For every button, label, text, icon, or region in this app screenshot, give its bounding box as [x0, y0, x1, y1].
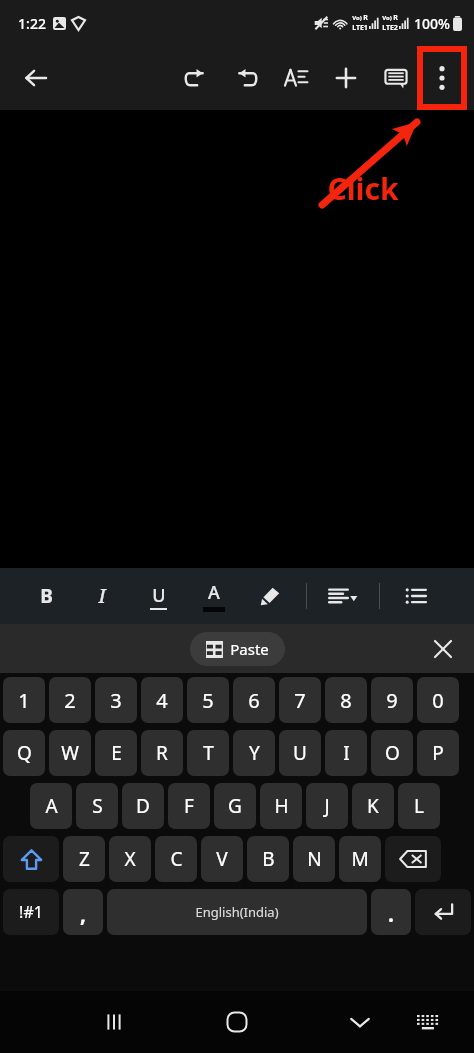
button[interactable]: 1 — [3, 677, 45, 723]
button[interactable]: I — [325, 730, 367, 776]
button[interactable]: Z — [63, 836, 105, 882]
button[interactable]: C — [155, 836, 197, 882]
button[interactable]: D — [122, 783, 164, 829]
button[interactable]: F — [168, 783, 210, 829]
staticText: C — [170, 846, 183, 872]
staticText: A — [208, 580, 220, 605]
button[interactable]: 5 — [187, 677, 229, 723]
button[interactable]: Enter — [415, 889, 471, 935]
staticText: O — [385, 740, 400, 766]
staticText: Vo) — [352, 14, 362, 22]
button[interactable]: W — [49, 730, 91, 776]
button[interactable]: P — [417, 730, 459, 776]
button[interactable]: 0 — [417, 677, 459, 723]
staticText: S — [92, 793, 103, 819]
staticText: B — [262, 846, 275, 872]
button[interactable]: Insert — [326, 58, 366, 98]
button[interactable]: 4 — [141, 677, 183, 723]
button[interactable]: R — [141, 730, 183, 776]
staticText: , — [80, 900, 86, 929]
button[interactable]: Format — [323, 574, 363, 618]
staticText: Paste — [230, 639, 269, 659]
button[interactable]: J — [306, 783, 348, 829]
staticText: R — [363, 13, 368, 23]
staticText: Click — [327, 168, 399, 209]
staticText: . — [388, 900, 394, 929]
button[interactable]: 9 — [371, 677, 413, 723]
button[interactable]: H — [260, 783, 302, 829]
button[interactable]: M — [339, 836, 381, 882]
button[interactable]: N — [293, 836, 335, 882]
button[interactable]: K — [352, 783, 394, 829]
button[interactable]: S — [76, 783, 118, 829]
staticText: Q — [17, 740, 32, 766]
staticText: 8 — [340, 687, 352, 714]
button[interactable]: G — [214, 783, 256, 829]
button[interactable]: Q — [3, 730, 45, 776]
button[interactable]: Shift — [3, 836, 59, 882]
button[interactable]: A — [30, 783, 72, 829]
staticText: E — [111, 740, 122, 766]
button[interactable]: X — [109, 836, 151, 882]
button[interactable]: Backspace — [385, 836, 441, 882]
button[interactable]: 6 — [233, 677, 275, 723]
button[interactable]: 8 — [325, 677, 367, 723]
staticText: Y — [249, 740, 260, 766]
button[interactable]: 2 — [49, 677, 91, 723]
staticText: I — [343, 740, 350, 766]
button[interactable]: Recents — [90, 998, 138, 1046]
button[interactable]: Comment — [376, 58, 416, 98]
button[interactable]: Format — [396, 574, 436, 618]
button[interactable]: Format — [26, 574, 66, 618]
button[interactable]: B — [247, 836, 289, 882]
staticText: K — [367, 793, 379, 819]
button[interactable]: Paste — [190, 632, 285, 666]
button[interactable]: Keyboard — [406, 1000, 450, 1044]
button[interactable]: !#1 — [3, 889, 59, 935]
button[interactable]: U — [279, 730, 321, 776]
button[interactable]: Hide keyboard — [336, 998, 384, 1046]
staticText: I — [98, 583, 106, 609]
button[interactable]: Format — [250, 574, 290, 618]
staticText: M — [351, 846, 369, 872]
button[interactable]: Y — [233, 730, 275, 776]
button[interactable]: Home — [213, 998, 261, 1046]
staticText: Vo) — [382, 14, 392, 22]
button[interactable]: L — [398, 783, 440, 829]
staticText: 100% — [414, 14, 450, 33]
button[interactable]: Format — [82, 574, 122, 618]
button[interactable]: Close — [426, 632, 460, 666]
staticText: LTE1 — [352, 23, 368, 33]
button[interactable]: Format — [194, 574, 234, 618]
button[interactable]: Format — [138, 574, 178, 618]
button[interactable]: Redo — [226, 58, 266, 98]
staticText: !#1 — [19, 901, 43, 923]
staticText: V — [216, 846, 228, 872]
button[interactable]: English(India) — [107, 889, 367, 935]
button[interactable]: V — [201, 836, 243, 882]
staticText: D — [136, 793, 150, 819]
staticText: 7 — [294, 687, 306, 714]
button[interactable]: , — [63, 889, 103, 935]
staticText: G — [228, 793, 242, 819]
staticText: J — [324, 793, 330, 819]
staticText: 4 — [156, 687, 168, 714]
staticText: T — [203, 740, 214, 766]
staticText: 6 — [248, 687, 260, 714]
button[interactable]: . — [371, 889, 411, 935]
button[interactable]: Back — [12, 54, 60, 102]
button[interactable]: E — [95, 730, 137, 776]
button[interactable]: 3 — [95, 677, 137, 723]
button[interactable]: Text format — [276, 58, 316, 98]
button[interactable]: More options — [420, 49, 464, 107]
button[interactable]: Undo — [176, 58, 216, 98]
staticText: H — [274, 793, 289, 819]
staticText: 1:22 — [18, 14, 46, 33]
button[interactable]: T — [187, 730, 229, 776]
staticText: 9 — [386, 687, 398, 714]
staticText: L — [414, 793, 424, 819]
button[interactable]: 7 — [279, 677, 321, 723]
staticText: W — [61, 740, 79, 766]
staticText: Z — [79, 846, 90, 872]
button[interactable]: O — [371, 730, 413, 776]
